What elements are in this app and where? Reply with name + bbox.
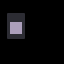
button[interactable] (7, 13, 25, 39)
